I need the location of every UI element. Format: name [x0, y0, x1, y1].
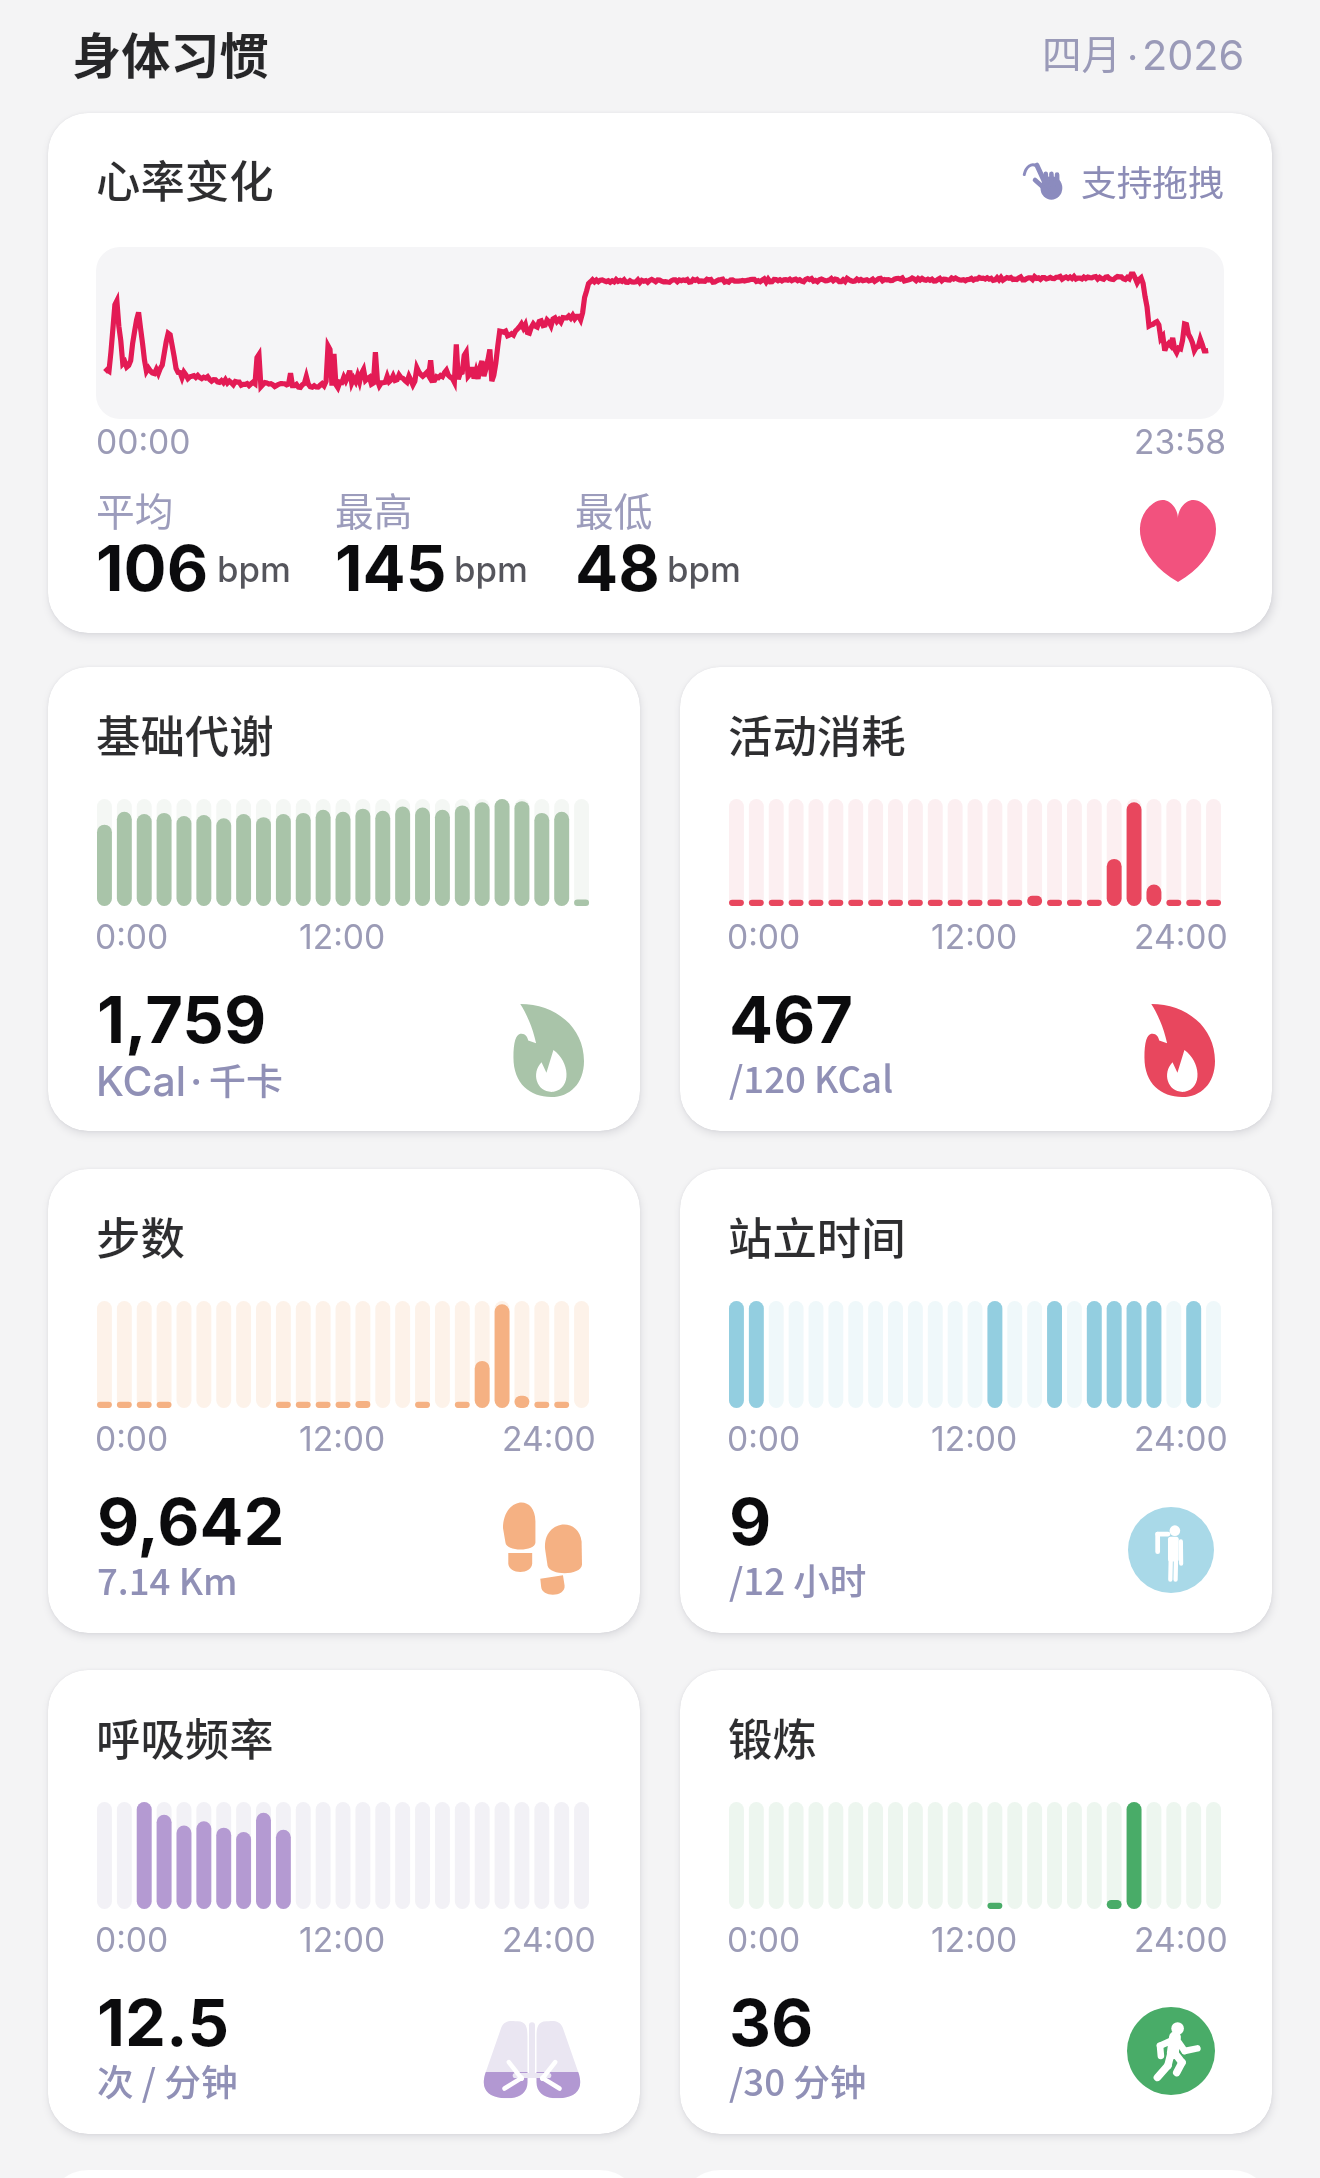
staticText: 48: [575, 529, 660, 606]
button[interactable]: 支持拖拽 · Drag to reorder: [1014, 149, 1234, 211]
staticText: ·: [190, 1056, 203, 1105]
staticText: 36: [729, 1983, 814, 2062]
button[interactable]: 站立时间: [680, 1169, 1272, 1633]
staticText: 23:58: [1134, 421, 1227, 462]
button[interactable]: 四月: [1034, 12, 1252, 80]
staticText: ·: [1127, 33, 1139, 80]
button[interactable]: 呼吸频率: [48, 1670, 640, 2134]
staticText: 12:00: [299, 916, 386, 957]
staticText: 24:00: [1134, 1418, 1228, 1459]
staticText: 心率变化: [96, 146, 274, 210]
staticText: KCal: [96, 1056, 186, 1105]
staticText: 四月: [1042, 23, 1122, 80]
staticText: 0:00: [727, 916, 801, 957]
staticText: 呼吸频率: [96, 1704, 274, 1768]
staticText: 支持拖拽: [1081, 155, 1224, 207]
staticText: 106: [96, 529, 209, 606]
staticText: bpm: [667, 548, 741, 590]
staticText: 1,759: [97, 980, 267, 1059]
staticText: 24:00: [1134, 1919, 1228, 1960]
staticText: /30 分钟: [729, 2054, 867, 2107]
staticText: 12:00: [931, 916, 1018, 957]
staticText: 0:00: [95, 916, 169, 957]
staticText: 145: [335, 529, 447, 606]
staticText: bpm: [454, 548, 528, 590]
button[interactable]: 基础代谢: [48, 667, 640, 1131]
staticText: 平均: [96, 481, 174, 537]
staticText: bpm: [217, 548, 291, 590]
staticText: 0:00: [95, 1418, 169, 1459]
staticText: 最高: [335, 481, 413, 537]
staticText: 0:00: [727, 1919, 801, 1960]
staticText: 467: [729, 980, 854, 1059]
staticText: 2026: [1142, 30, 1245, 80]
staticText: 千卡: [209, 1052, 283, 1105]
staticText: 次 / 分钟: [97, 2054, 238, 2107]
staticText: 24:00: [1134, 916, 1228, 957]
staticText: 9,642: [97, 1482, 285, 1561]
staticText: 12:00: [931, 1418, 1018, 1459]
staticText: 身体习惯: [72, 17, 269, 88]
staticText: 24:00: [502, 1418, 596, 1459]
staticText: 24:00: [502, 1919, 596, 1960]
button[interactable]: 锻炼: [680, 1670, 1272, 2134]
staticText: /120 KCal: [729, 1051, 894, 1104]
staticText: 12:00: [299, 1418, 386, 1459]
button[interactable]: 步数: [48, 1169, 640, 1633]
staticText: 站立时间: [728, 1203, 906, 1267]
staticText: 锻炼: [728, 1704, 817, 1768]
staticText: 步数: [96, 1203, 185, 1267]
staticText: 9: [729, 1482, 772, 1561]
staticText: 0:00: [727, 1418, 801, 1459]
staticText: 12.5: [97, 1983, 229, 2062]
staticText: /12 小时: [729, 1553, 867, 1606]
staticText: 0:00: [95, 1919, 169, 1960]
button[interactable]: 活动消耗: [680, 667, 1272, 1131]
staticText: 基础代谢: [96, 701, 274, 765]
button[interactable]: 心率变化: [48, 113, 1272, 633]
staticText: 7.14 Km: [97, 1553, 238, 1606]
staticText: 最低: [575, 481, 653, 537]
staticText: 活动消耗: [728, 701, 906, 765]
staticText: 12:00: [299, 1919, 386, 1960]
staticText: 12:00: [931, 1919, 1018, 1960]
staticText: 00:00: [96, 421, 191, 462]
